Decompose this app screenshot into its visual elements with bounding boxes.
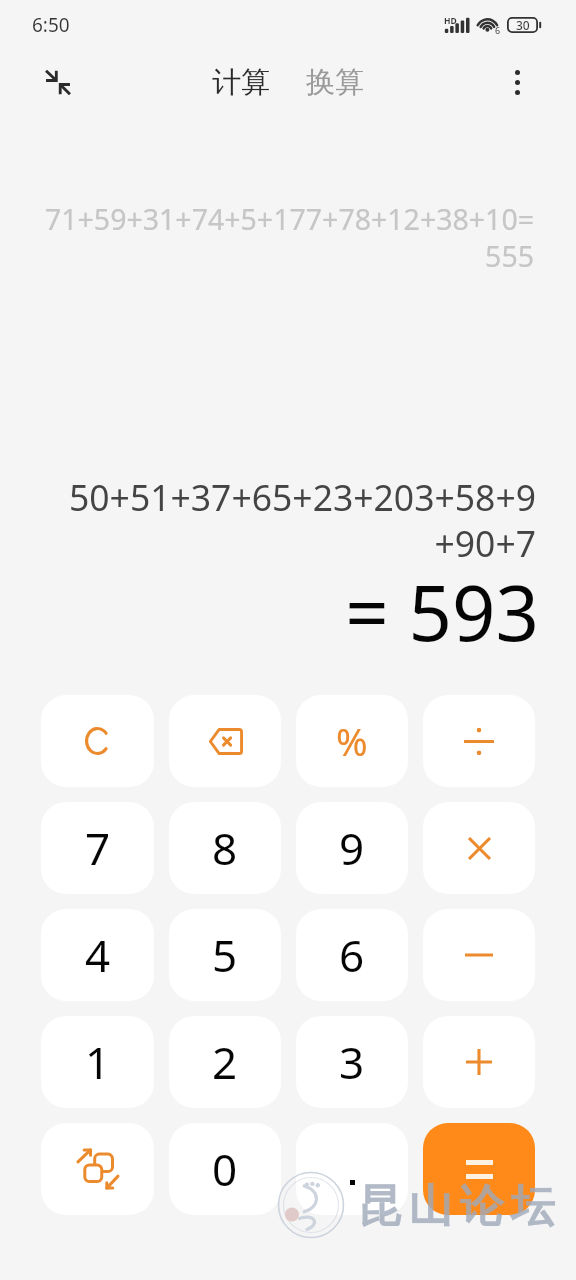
staticText: 30 xyxy=(516,17,530,33)
staticText: 1 xyxy=(85,1032,111,1092)
button[interactable]: Backspace xyxy=(169,695,281,787)
button[interactable]: Unit conversion xyxy=(41,1123,154,1215)
staticText: 9 xyxy=(339,818,365,878)
button[interactable]: Equals xyxy=(423,1123,535,1215)
staticText: 3 xyxy=(339,1032,365,1092)
staticText: 6 xyxy=(495,24,501,36)
button[interactable] xyxy=(296,1123,408,1215)
button[interactable]: More options xyxy=(493,58,541,106)
button[interactable]: 5 xyxy=(169,909,281,1001)
button[interactable]: 4 xyxy=(41,909,154,1001)
staticText: +90+7 xyxy=(434,519,536,567)
button[interactable]: 1 xyxy=(41,1016,154,1108)
staticText: 0 xyxy=(212,1139,238,1199)
staticText: 计算 xyxy=(212,64,270,101)
button[interactable]: 换算 xyxy=(301,58,369,107)
button[interactable]: 8 xyxy=(169,802,281,894)
button[interactable]: 2 xyxy=(169,1016,281,1108)
staticText: 换算 xyxy=(306,64,364,101)
button[interactable]: 0 xyxy=(169,1123,281,1215)
staticText: % xyxy=(336,715,368,767)
staticText: = 593 xyxy=(345,560,539,664)
staticText: 8 xyxy=(212,818,238,878)
staticText: 50+51+37+65+23+203+58+9 xyxy=(68,473,536,521)
button[interactable]: 6 xyxy=(296,909,408,1001)
button[interactable]: Clear xyxy=(41,695,154,787)
button[interactable]: Multiply xyxy=(423,802,535,894)
staticText: HD xyxy=(444,15,457,27)
staticText: 555 xyxy=(485,237,534,276)
button[interactable]: Minus xyxy=(423,909,535,1001)
button[interactable]: Divide xyxy=(423,695,535,787)
button[interactable]: Plus xyxy=(423,1016,535,1108)
button[interactable]: 计算 xyxy=(207,58,275,107)
staticText: 2 xyxy=(212,1032,238,1092)
staticText: 4 xyxy=(85,925,111,985)
staticText: 6:50 xyxy=(32,12,70,38)
staticText: 7 xyxy=(85,818,111,878)
button[interactable]: 9 xyxy=(296,802,408,894)
button[interactable]: 7 xyxy=(41,802,154,894)
button[interactable]: Collapse xyxy=(34,58,82,106)
button[interactable]: 3 xyxy=(296,1016,408,1108)
button[interactable]: Percent xyxy=(296,695,408,787)
staticText: 71+59+31+74+5+177+78+12+38+10= xyxy=(44,200,534,239)
staticText: 5 xyxy=(212,925,238,985)
staticText: 昆山论坛 xyxy=(354,1179,558,1234)
staticText: 6 xyxy=(339,925,365,985)
